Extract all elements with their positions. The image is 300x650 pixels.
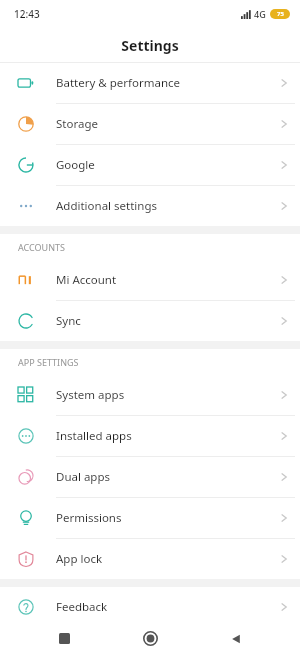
staticText: ACCOUNTS [18,241,65,253]
button[interactable]: Recents [42,627,86,650]
staticText: Storage [56,116,98,132]
button[interactable]: Additional settings [0,186,300,226]
staticText: 75 [277,10,284,18]
staticText: Mi Account [56,272,117,288]
staticText: Settings [121,36,179,55]
button[interactable]: Google [0,145,300,185]
button[interactable]: Installed apps [0,416,300,456]
staticText: 4G [254,8,266,20]
staticText: Permissions [56,510,122,526]
staticText: 12:43 [14,7,40,21]
button[interactable]: System apps [0,375,300,415]
button[interactable]: Home [128,627,172,650]
button[interactable]: Permissions [0,498,300,538]
staticText: Google [56,157,95,173]
staticText: Sync [56,313,81,329]
button[interactable]: Dual apps [0,457,300,497]
button[interactable]: Battery & performance [0,63,300,103]
staticText: App lock [56,551,103,567]
staticText: APP SETTINGS [18,356,79,368]
staticText: Battery & performance [56,75,181,91]
staticText: Additional settings [56,198,158,214]
button[interactable]: Sync [0,301,300,341]
staticText: Feedback [56,599,108,615]
staticText: System apps [56,387,125,403]
button[interactable]: Feedback [0,587,300,627]
button[interactable]: Storage [0,104,300,144]
button[interactable]: Mi Account [0,260,300,300]
staticText: Installed apps [56,428,132,444]
button[interactable]: Back [214,627,258,650]
staticText: Dual apps [56,469,111,485]
button[interactable]: App lock [0,539,300,579]
